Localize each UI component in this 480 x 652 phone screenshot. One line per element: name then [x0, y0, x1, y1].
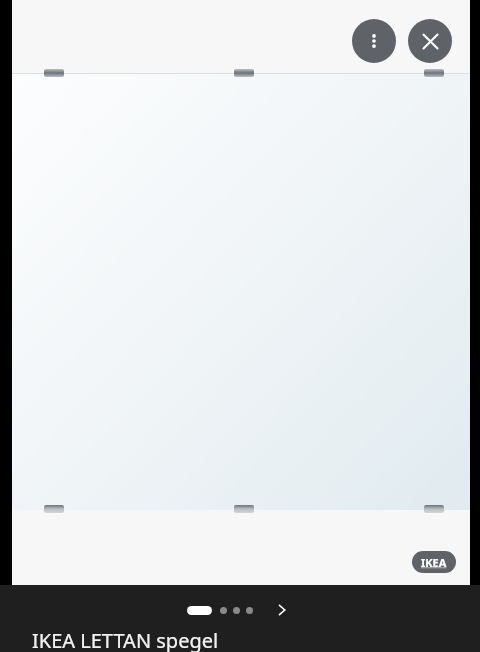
staticText: IKEA LETTAN spegel — [32, 627, 219, 652]
button[interactable]: IKEA — [412, 551, 456, 573]
button[interactable] — [187, 606, 212, 615]
button[interactable]: Next image — [271, 599, 293, 621]
button[interactable] — [233, 607, 240, 614]
button[interactable] — [246, 607, 253, 614]
button[interactable]: More options — [352, 19, 396, 63]
button[interactable]: Close — [408, 19, 452, 63]
staticText: IKEA — [421, 555, 447, 570]
button[interactable] — [220, 607, 227, 614]
